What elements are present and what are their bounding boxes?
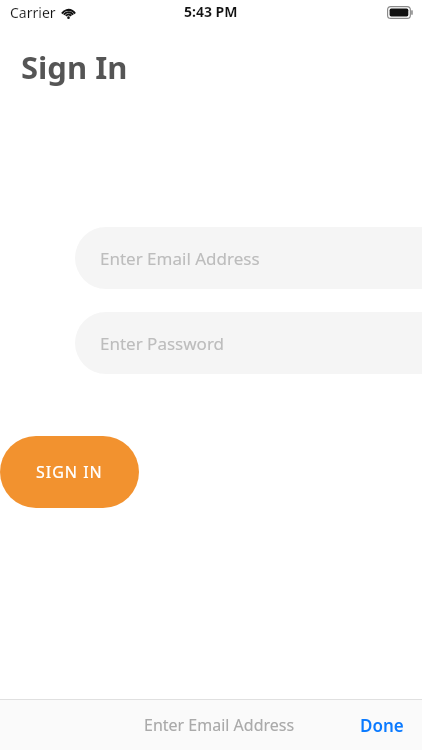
staticText: Sign In [21, 46, 128, 88]
other: Battery [387, 6, 413, 19]
staticText: SIGN IN [36, 461, 103, 483]
button[interactable]: SIGN IN [0, 436, 139, 508]
button[interactable]: Done [354, 708, 410, 743]
staticText: 5:43 PM [184, 2, 238, 21]
button[interactable]: Enter Password [75, 312, 422, 374]
staticText: Done [360, 714, 404, 737]
staticText: Enter Password [100, 332, 225, 355]
button[interactable]: Enter Email Address [75, 227, 422, 289]
button[interactable]: Enter Email Address [144, 714, 295, 736]
staticText: Enter Email Address [100, 247, 260, 270]
staticText: Carrier [10, 3, 56, 22]
